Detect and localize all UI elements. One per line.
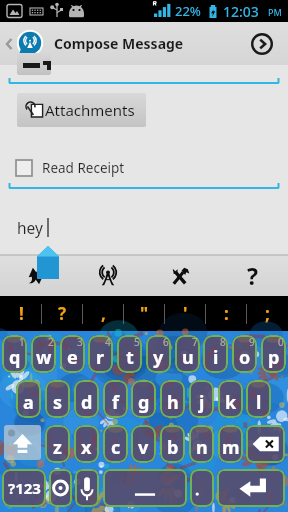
staticText: 1 xyxy=(19,335,25,349)
staticText: 7 xyxy=(192,335,198,349)
staticText: b xyxy=(167,435,179,460)
staticText: s xyxy=(53,390,63,415)
button[interactable]: n xyxy=(189,425,214,463)
staticText: t xyxy=(126,345,134,370)
button[interactable]: Next xyxy=(251,33,273,55)
button[interactable]: f xyxy=(103,380,128,418)
button[interactable]: Voice input xyxy=(75,469,99,507)
staticText: v xyxy=(138,435,149,460)
button[interactable]: ?123 xyxy=(2,469,46,507)
staticText: w xyxy=(36,345,52,370)
button[interactable]: Up xyxy=(0,30,44,58)
button[interactable]: d xyxy=(74,380,99,418)
staticText: 22% xyxy=(175,2,201,20)
staticText: ! xyxy=(19,302,24,325)
staticText: ?123 xyxy=(8,478,41,498)
button[interactable]: g xyxy=(131,380,156,418)
staticText: PM xyxy=(268,6,282,18)
staticText: 12:03 xyxy=(223,2,259,21)
button[interactable]: Shift xyxy=(4,425,41,460)
staticText: 0 xyxy=(278,335,284,349)
staticText: d xyxy=(81,390,93,415)
staticText: , xyxy=(101,302,106,325)
button[interactable]: 9 xyxy=(232,335,257,373)
button[interactable]: c xyxy=(103,425,128,463)
staticText: u xyxy=(182,345,194,370)
staticText: g xyxy=(138,390,150,415)
staticText: Read Receipt xyxy=(42,159,125,177)
button[interactable]: Add contact xyxy=(17,53,51,75)
button[interactable]: 8 xyxy=(203,335,228,373)
button[interactable]: 7 xyxy=(175,335,200,373)
button[interactable]: 3 xyxy=(60,335,85,373)
button[interactable]: ; xyxy=(247,296,288,331)
staticText: 8 xyxy=(220,335,226,349)
button[interactable]: h xyxy=(160,380,185,418)
staticText: j xyxy=(199,390,205,415)
button[interactable]: ? xyxy=(42,296,83,331)
staticText: x xyxy=(81,435,92,460)
button[interactable]: Refresh xyxy=(0,255,72,296)
staticText: 5 xyxy=(134,335,140,349)
staticText: z xyxy=(53,435,62,460)
staticText: p xyxy=(268,345,280,370)
button[interactable]: Enter xyxy=(217,469,285,507)
button[interactable]: ' xyxy=(165,296,206,331)
button[interactable]: z xyxy=(45,425,70,463)
staticText: c xyxy=(111,435,121,460)
staticText: 3 xyxy=(77,335,83,349)
button[interactable]: Attachments xyxy=(17,93,146,127)
staticText: Attachments xyxy=(45,100,135,120)
button[interactable]: Help xyxy=(216,255,288,296)
staticText: o xyxy=(239,345,251,370)
button[interactable]: 0 xyxy=(261,335,286,373)
button[interactable]: : xyxy=(206,296,247,331)
staticText: n xyxy=(196,435,208,460)
staticText: k xyxy=(225,390,237,415)
button[interactable]: 5 xyxy=(117,335,142,373)
staticText: y xyxy=(153,345,164,370)
button[interactable]: b xyxy=(160,425,185,463)
button[interactable]: " xyxy=(124,296,165,331)
button[interactable]: k xyxy=(218,380,243,418)
button[interactable]: 1 xyxy=(2,335,27,373)
button[interactable]: ! xyxy=(0,296,42,331)
button[interactable]: l xyxy=(246,380,271,418)
staticText: h xyxy=(167,390,179,415)
staticText: 4 xyxy=(105,335,111,349)
staticText: r xyxy=(96,345,105,370)
staticText: 6 xyxy=(163,335,169,349)
button[interactable]: x xyxy=(74,425,99,463)
button[interactable]: 2 xyxy=(31,335,56,373)
button[interactable]: Tools xyxy=(144,255,216,296)
staticText: ? xyxy=(58,302,67,325)
button[interactable]: j xyxy=(189,380,214,418)
button[interactable]: Read Receipt xyxy=(16,159,125,177)
button[interactable]: m xyxy=(218,425,243,463)
staticText: i xyxy=(213,345,219,370)
button[interactable]: , xyxy=(83,296,124,331)
button[interactable]: Broadcast xyxy=(72,255,144,296)
button[interactable]: 6 xyxy=(146,335,171,373)
button[interactable]: v xyxy=(131,425,156,463)
staticText: : xyxy=(224,302,229,325)
staticText: q xyxy=(9,345,21,370)
button[interactable]: s xyxy=(45,380,70,418)
button[interactable]: Settings xyxy=(49,469,72,507)
button[interactable]: Backspace xyxy=(246,425,285,463)
staticText: " xyxy=(140,302,149,325)
button[interactable]: 4 xyxy=(88,335,113,373)
button[interactable]: Space xyxy=(103,469,187,507)
staticText: e xyxy=(67,345,78,370)
button[interactable]: Period xyxy=(190,469,214,507)
button[interactable]: a xyxy=(16,380,41,418)
staticText: a xyxy=(23,390,34,415)
staticText: 2 xyxy=(48,335,54,349)
staticText: ' xyxy=(183,302,188,325)
staticText: f xyxy=(112,390,119,415)
staticText: m xyxy=(222,435,240,460)
staticText: hey xyxy=(17,217,43,238)
staticText: l xyxy=(256,390,262,415)
staticText: Compose Message xyxy=(54,34,184,53)
other: Up xyxy=(4,34,14,54)
